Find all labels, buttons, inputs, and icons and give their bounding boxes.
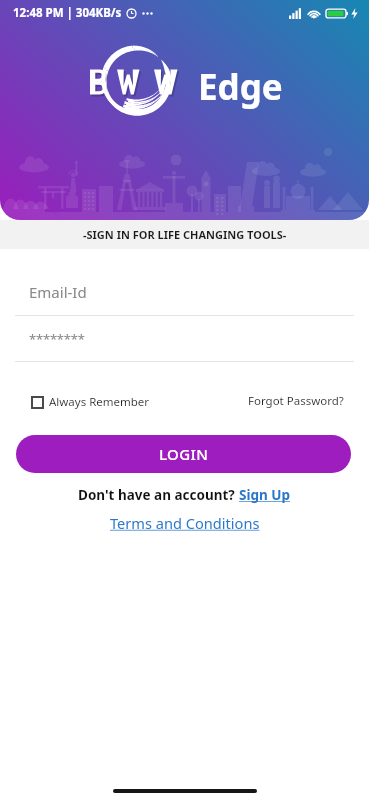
button[interactable]: Always Remember [26, 391, 155, 413]
staticText: Email-Id [29, 282, 87, 302]
staticText: LOGIN [159, 444, 209, 464]
staticText: Edge [198, 63, 283, 111]
staticText: ******** [29, 330, 85, 348]
staticText: -SIGN IN FOR LIFE CHANGING TOOLS- [83, 227, 287, 242]
button[interactable]: Forgot Password? [240, 389, 352, 413]
staticText: Don't have an account? [78, 486, 239, 504]
staticText: 12:48 PM | 304KB/s [13, 5, 122, 21]
button[interactable]: Terms and Conditions [106, 509, 264, 537]
button[interactable]: LOGIN [16, 435, 351, 473]
button[interactable]: Sign Up [239, 486, 291, 504]
button[interactable]: ******** [0, 328, 369, 361]
button[interactable]: Email-Id [0, 281, 369, 315]
staticText: Always Remember [49, 394, 150, 410]
